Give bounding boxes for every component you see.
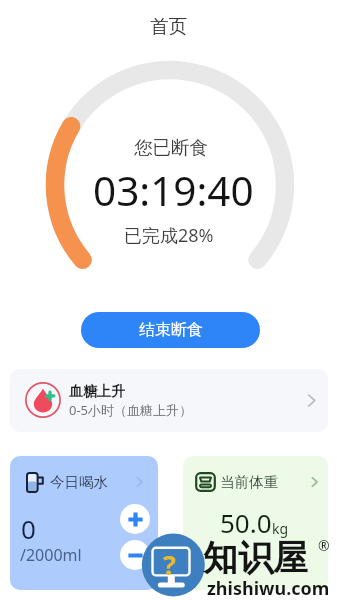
staticText: ® — [318, 536, 330, 555]
staticText: 50.0 — [220, 505, 272, 540]
staticText: /2000ml — [20, 544, 82, 566]
staticText: 今日喝水 — [50, 473, 108, 491]
button[interactable]: 今日喝水 — [10, 456, 158, 590]
staticText: 血糖上升 — [69, 383, 125, 401]
staticText: 知识屋 — [203, 536, 308, 580]
button[interactable]: 结束断食 — [81, 312, 260, 348]
staticText: 结束断食 — [139, 320, 203, 340]
staticText: 首页 — [150, 15, 187, 38]
button[interactable]: Add water — [120, 504, 150, 534]
staticText: kg — [272, 519, 289, 538]
staticText: 已完成28% — [124, 223, 214, 248]
button[interactable]: 当前体重 — [183, 456, 328, 590]
staticText: zhishiwu.com — [207, 576, 330, 600]
staticText: 0-5小时（血糖上升） — [69, 401, 193, 419]
button[interactable]: 血糖上升 — [10, 369, 328, 432]
button[interactable]: Remove water — [120, 540, 150, 570]
staticText: ? — [163, 546, 176, 583]
staticText: 当前体重 — [220, 473, 278, 491]
staticText: 0 — [21, 511, 36, 546]
staticText: 您已断食 — [134, 136, 208, 159]
staticText: 03:19:40 — [93, 163, 254, 218]
